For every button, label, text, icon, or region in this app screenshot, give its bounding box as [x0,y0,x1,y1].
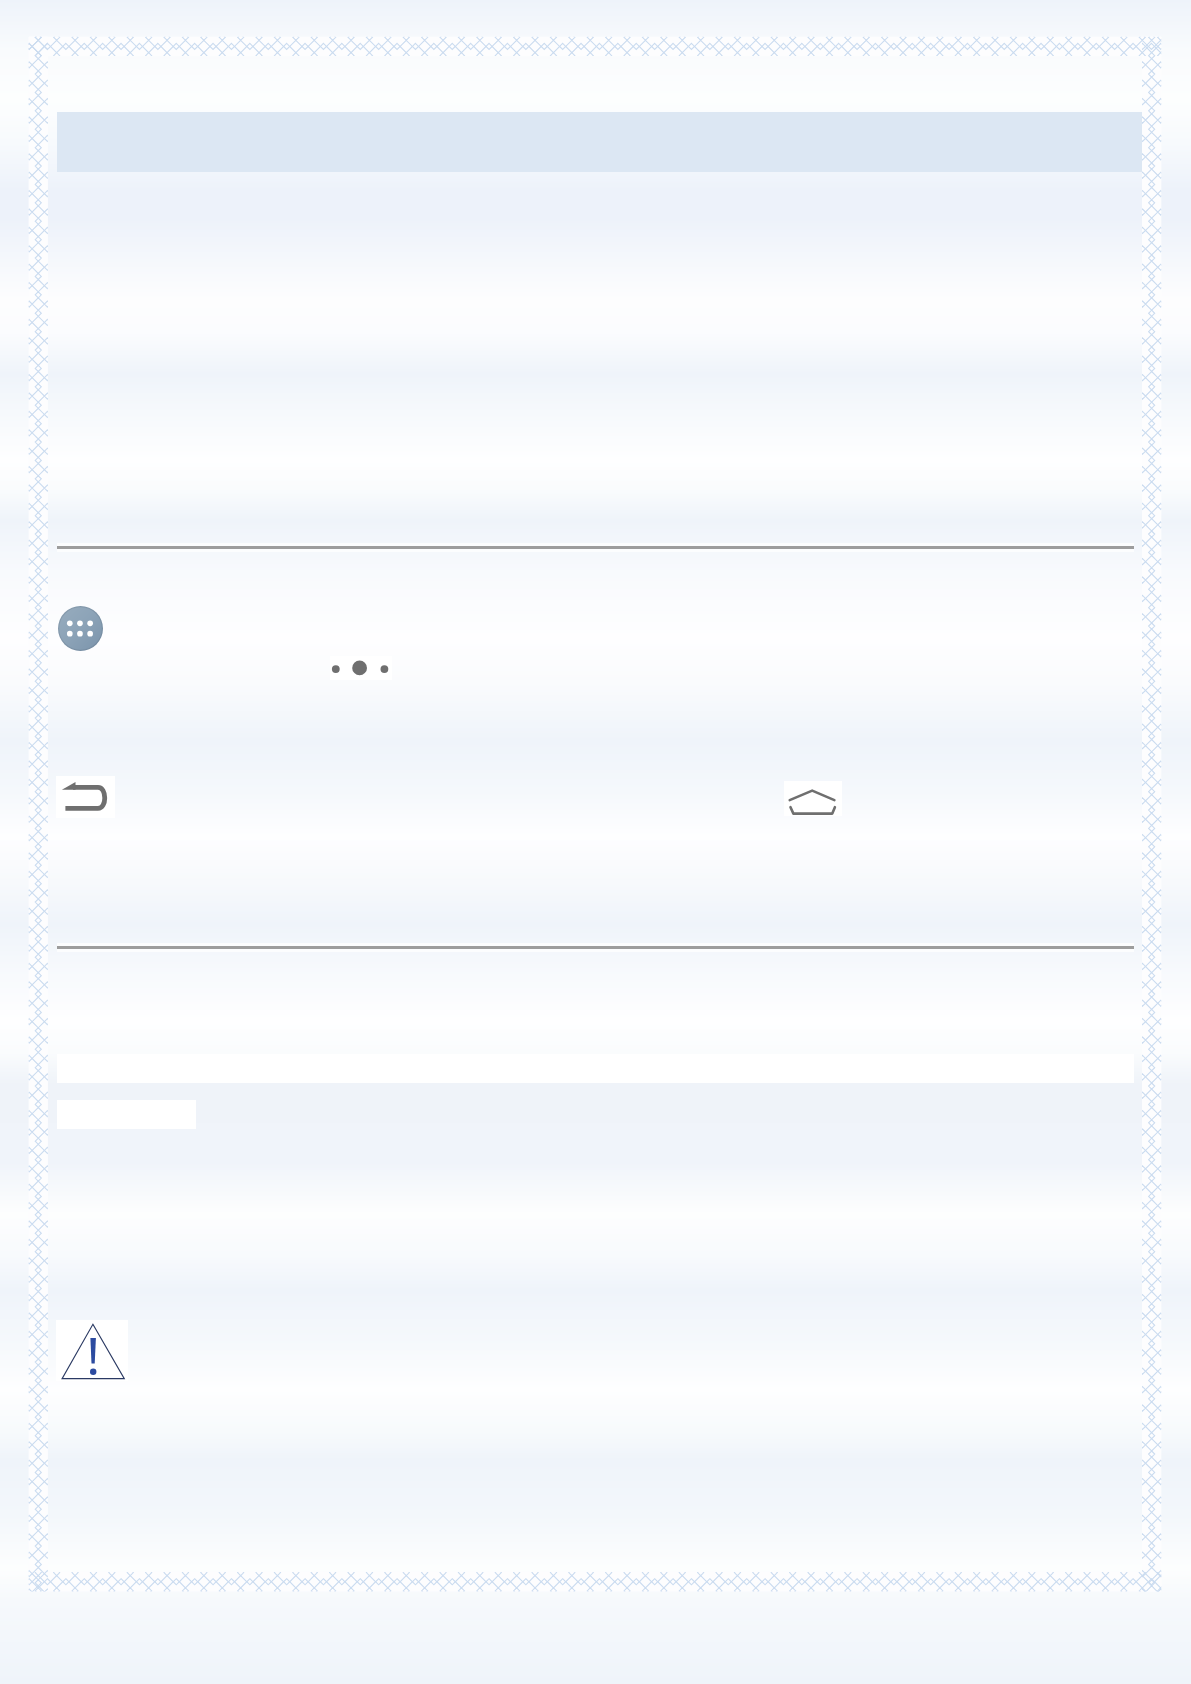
button[interactable]: Page indicator [330,656,392,680]
button[interactable]: Home [784,781,842,816]
button[interactable]: Back [56,776,115,818]
button[interactable]: Apps [58,606,103,651]
